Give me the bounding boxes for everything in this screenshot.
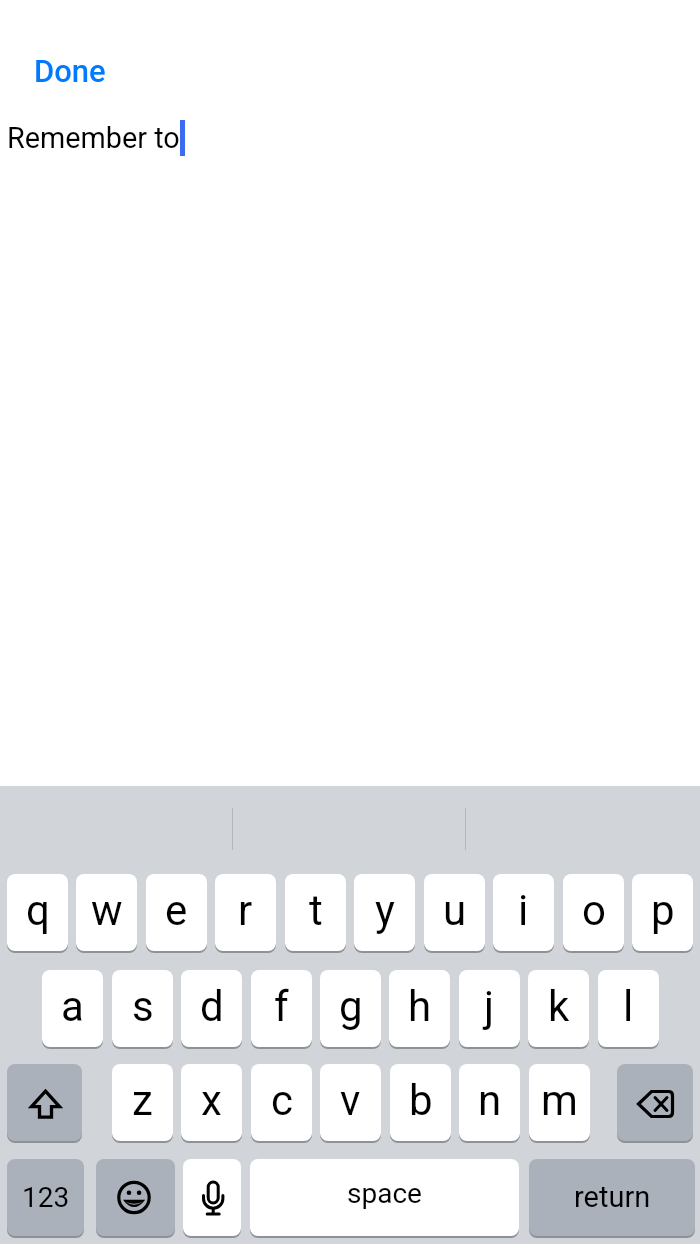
button[interactable]: v (320, 1064, 381, 1141)
button[interactable]: space (250, 1159, 519, 1236)
staticText: h (408, 982, 432, 1031)
staticText: c (271, 1076, 293, 1125)
button[interactable]: Note text (0, 110, 700, 770)
staticText: m (541, 1076, 578, 1125)
button[interactable]: s (112, 970, 173, 1047)
staticText: l (623, 982, 634, 1031)
staticText: f (274, 982, 289, 1031)
staticText: d (200, 982, 224, 1031)
staticText: y (375, 886, 395, 935)
button[interactable]: w (76, 874, 137, 951)
staticText: i (518, 886, 529, 935)
button[interactable]: k (528, 970, 589, 1047)
staticText: g (339, 982, 363, 1031)
staticText: n (478, 1076, 502, 1125)
button[interactable]: d (181, 970, 242, 1047)
button[interactable]: 123 (7, 1159, 84, 1236)
staticText: p (651, 886, 675, 935)
staticText: t (309, 886, 323, 935)
staticText: s (132, 982, 154, 1031)
staticText: a (61, 982, 84, 1031)
staticText: w (91, 886, 123, 935)
button[interactable]: r (215, 874, 276, 951)
button[interactable]: i (493, 874, 554, 951)
button[interactable]: l (598, 970, 659, 1047)
staticText: o (582, 886, 606, 935)
button[interactable]: g (320, 970, 381, 1047)
button[interactable]: c (251, 1064, 312, 1141)
staticText: space (347, 1177, 422, 1210)
staticText: k (548, 982, 570, 1031)
button[interactable]: u (424, 874, 485, 951)
button[interactable]: f (251, 970, 312, 1047)
button[interactable]: j (459, 970, 520, 1047)
staticText: q (26, 886, 50, 935)
staticText: v (340, 1076, 361, 1125)
staticText: Remember to (7, 121, 180, 155)
staticText: j (484, 982, 495, 1031)
staticText: 123 (22, 1181, 70, 1214)
button[interactable]: x (181, 1064, 242, 1141)
button[interactable]: h (389, 970, 450, 1047)
button[interactable]: Dictation (183, 1159, 241, 1236)
button[interactable]: Emoji keyboard (96, 1159, 175, 1236)
staticText: z (132, 1076, 153, 1125)
button[interactable]: return (529, 1159, 695, 1236)
button[interactable]: t (285, 874, 346, 951)
staticText: u (443, 886, 467, 935)
button[interactable]: m (529, 1064, 590, 1141)
staticText: return (574, 1180, 651, 1214)
button[interactable]: Backspace (617, 1064, 693, 1141)
button[interactable]: e (146, 874, 207, 951)
button[interactable]: q (7, 874, 68, 951)
button[interactable]: n (459, 1064, 520, 1141)
button[interactable]: a (42, 970, 103, 1047)
staticText: b (409, 1076, 433, 1125)
button[interactable]: p (632, 874, 693, 951)
button[interactable]: y (354, 874, 415, 951)
button[interactable]: Shift (7, 1064, 82, 1141)
staticText: r (238, 886, 253, 935)
staticText: e (165, 886, 188, 935)
staticText: Done (34, 53, 106, 89)
button[interactable]: Done (14, 46, 118, 94)
button[interactable]: b (390, 1064, 451, 1141)
button[interactable]: z (112, 1064, 173, 1141)
button[interactable]: o (563, 874, 624, 951)
staticText: x (201, 1076, 222, 1125)
